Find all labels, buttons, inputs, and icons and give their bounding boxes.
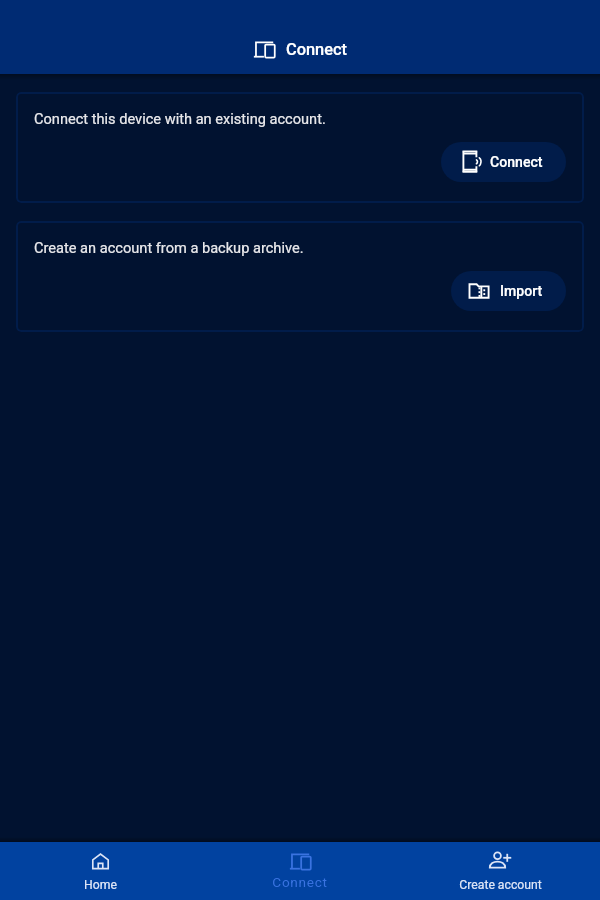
staticText: Home bbox=[84, 878, 117, 892]
staticText: Create account bbox=[459, 878, 542, 892]
other: Import bbox=[467, 279, 491, 303]
staticText: Create an account from a backup archive. bbox=[34, 239, 304, 256]
button[interactable]: Home bbox=[0, 842, 200, 900]
staticText: Connect bbox=[272, 874, 328, 890]
button[interactable]: Import bbox=[451, 271, 566, 311]
staticText: Import bbox=[500, 283, 543, 300]
other: Connect bbox=[457, 150, 481, 174]
staticText: Connect bbox=[286, 40, 348, 59]
button[interactable]: Connect bbox=[441, 142, 566, 182]
button[interactable]: Create account bbox=[400, 842, 600, 900]
staticText: Connect this device with an existing acc… bbox=[34, 110, 326, 127]
button[interactable]: Connect bbox=[200, 842, 400, 900]
staticText: Connect bbox=[490, 154, 543, 171]
